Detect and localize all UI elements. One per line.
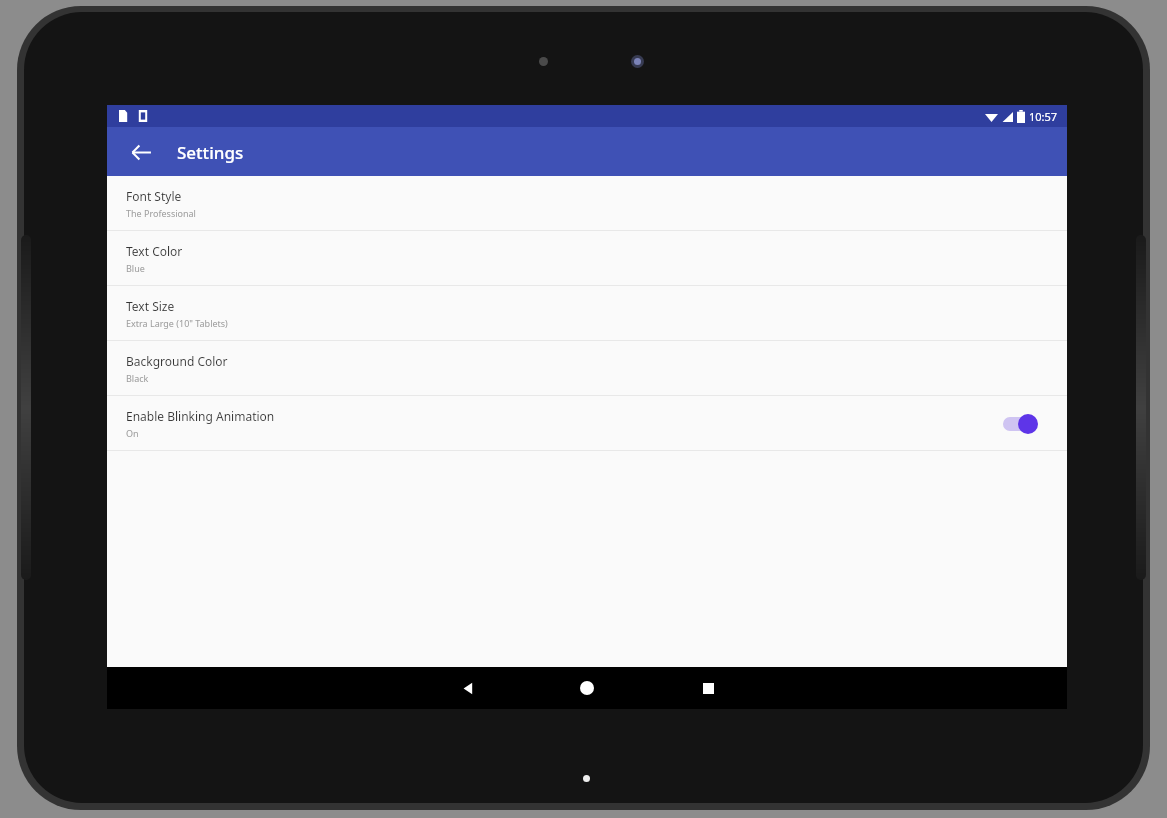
staticText: Text Size [126,298,175,314]
staticText: Extra Large (10" Tablets) [126,317,228,329]
button[interactable]: Back [437,667,497,709]
button[interactable]: Text Size [107,286,1067,341]
staticText: Black [126,372,149,384]
staticText: Background Color [126,353,228,369]
button[interactable]: Enable Blinking Animation [107,396,1067,451]
staticText: 10:57 [1029,109,1058,124]
staticText: Settings [177,141,244,164]
button[interactable]: Recent apps [678,667,738,709]
staticText: On [126,427,139,439]
button[interactable]: Home [557,667,617,709]
staticText: Text Color [126,243,183,259]
button[interactable]: Text Color [107,231,1067,286]
button[interactable]: Background Color [107,341,1067,396]
button[interactable]: Enable Blinking Animation [1000,408,1048,440]
button[interactable]: Back [119,130,163,174]
staticText: Blue [126,262,145,274]
staticText: Enable Blinking Animation [126,408,275,424]
staticText: The Professional [126,207,196,219]
button[interactable]: Font Style [107,176,1067,231]
staticText: Font Style [126,188,182,204]
